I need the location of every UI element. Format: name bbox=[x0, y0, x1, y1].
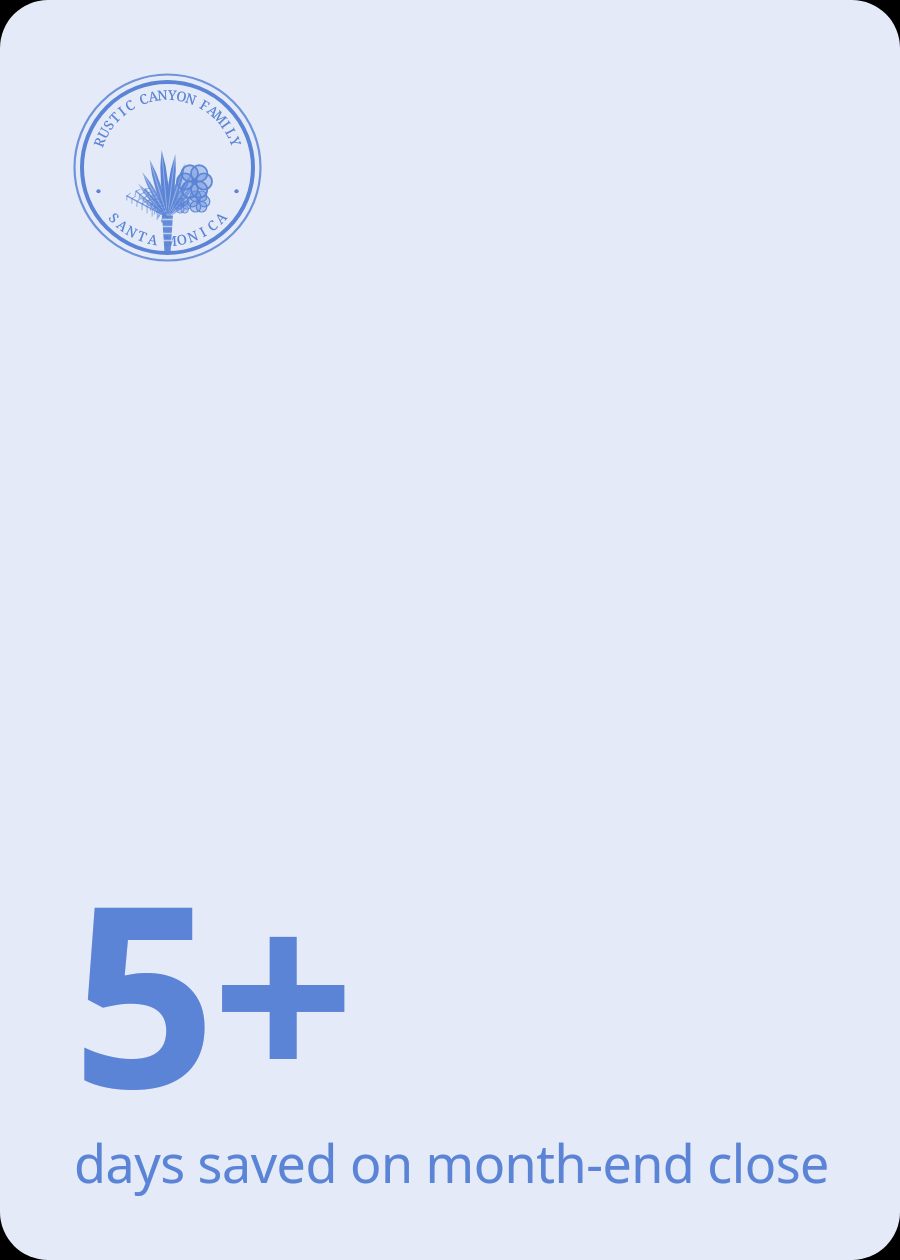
staticText: days saved on month-end close bbox=[74, 1127, 829, 1198]
staticText: 5+ bbox=[72, 818, 351, 1161]
button[interactable]: Rustic Canyon Family, Santa Monica logo bbox=[73, 73, 262, 262]
